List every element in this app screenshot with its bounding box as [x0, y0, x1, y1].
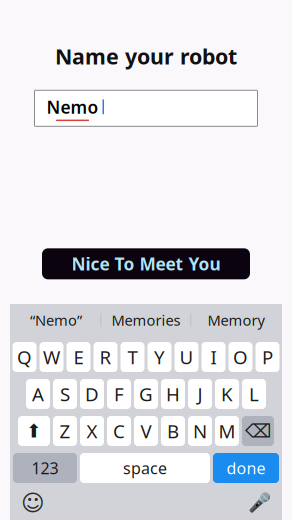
staticText: C [113, 419, 125, 443]
staticText: Memories [111, 310, 180, 330]
staticText: I [210, 345, 216, 369]
button[interactable]: L [242, 379, 266, 409]
button[interactable]: Memory [191, 304, 280, 336]
staticText: Y [154, 345, 165, 369]
staticText: Z [59, 419, 70, 443]
staticText: N [193, 419, 207, 443]
staticText: done [226, 457, 265, 479]
button[interactable]: N [188, 416, 212, 446]
staticText: Nice To Meet You [71, 252, 220, 275]
staticText: W [43, 345, 60, 369]
staticText: R [99, 345, 111, 369]
staticText: S [60, 382, 70, 406]
button[interactable]: space [80, 453, 210, 483]
button[interactable]: Delete [242, 416, 274, 446]
staticText: Memory [207, 310, 264, 330]
staticText: O [233, 345, 248, 369]
button[interactable]: Y [147, 342, 171, 372]
staticText: Q [17, 345, 32, 369]
staticText: E [73, 345, 83, 369]
button[interactable]: S [53, 379, 77, 409]
button[interactable]: C [107, 416, 131, 446]
button[interactable]: K [215, 379, 239, 409]
button[interactable]: J [188, 379, 212, 409]
staticText: space [123, 457, 167, 479]
button[interactable]: “Nemo” [11, 304, 100, 336]
staticText: L [249, 382, 259, 406]
button[interactable]: H [161, 379, 185, 409]
button[interactable]: done [213, 453, 279, 483]
button[interactable]: Nice To Meet You [42, 248, 250, 279]
staticText: V [140, 419, 151, 443]
button[interactable]: A [26, 379, 50, 409]
button[interactable]: I [201, 342, 225, 372]
button[interactable]: 123 [13, 453, 77, 483]
button[interactable]: Shift [18, 416, 50, 446]
button[interactable]: R [93, 342, 117, 372]
button[interactable]: U [174, 342, 198, 372]
button[interactable]: X [80, 416, 104, 446]
staticText: P [262, 345, 273, 369]
button[interactable]: T [120, 342, 144, 372]
staticText: T [127, 345, 137, 369]
button[interactable]: Z [53, 416, 77, 446]
staticText: Name your robot [55, 42, 237, 70]
staticText: ⬆ [26, 420, 42, 442]
staticText: A [32, 382, 44, 406]
staticText: 123 [31, 457, 58, 479]
button[interactable]: Q [12, 342, 36, 372]
staticText: 🎤 [247, 492, 270, 514]
button[interactable]: B [161, 416, 185, 446]
staticText: K [221, 382, 233, 406]
button[interactable]: Memories [101, 304, 190, 336]
button[interactable]: W [39, 342, 63, 372]
staticText: M [218, 419, 235, 443]
staticText: ⌫ [245, 420, 271, 442]
staticText: F [114, 382, 124, 406]
button[interactable]: O [228, 342, 252, 372]
staticText: ☺ [21, 490, 45, 516]
button[interactable]: E [66, 342, 90, 372]
staticText: D [85, 382, 99, 406]
staticText: J [197, 382, 202, 406]
button[interactable]: Emoji [18, 490, 48, 516]
staticText: G [139, 382, 153, 406]
staticText: “Nemo” [30, 310, 82, 330]
button[interactable]: D [80, 379, 104, 409]
button[interactable]: Dictate [244, 490, 274, 516]
staticText: Nemo [46, 96, 98, 119]
staticText: B [167, 419, 179, 443]
staticText: U [179, 345, 193, 369]
button[interactable]: P [255, 342, 279, 372]
button[interactable]: M [215, 416, 239, 446]
button[interactable]: V [134, 416, 158, 446]
staticText: H [166, 382, 180, 406]
button[interactable]: G [134, 379, 158, 409]
staticText: X [86, 419, 97, 443]
button[interactable]: F [107, 379, 131, 409]
